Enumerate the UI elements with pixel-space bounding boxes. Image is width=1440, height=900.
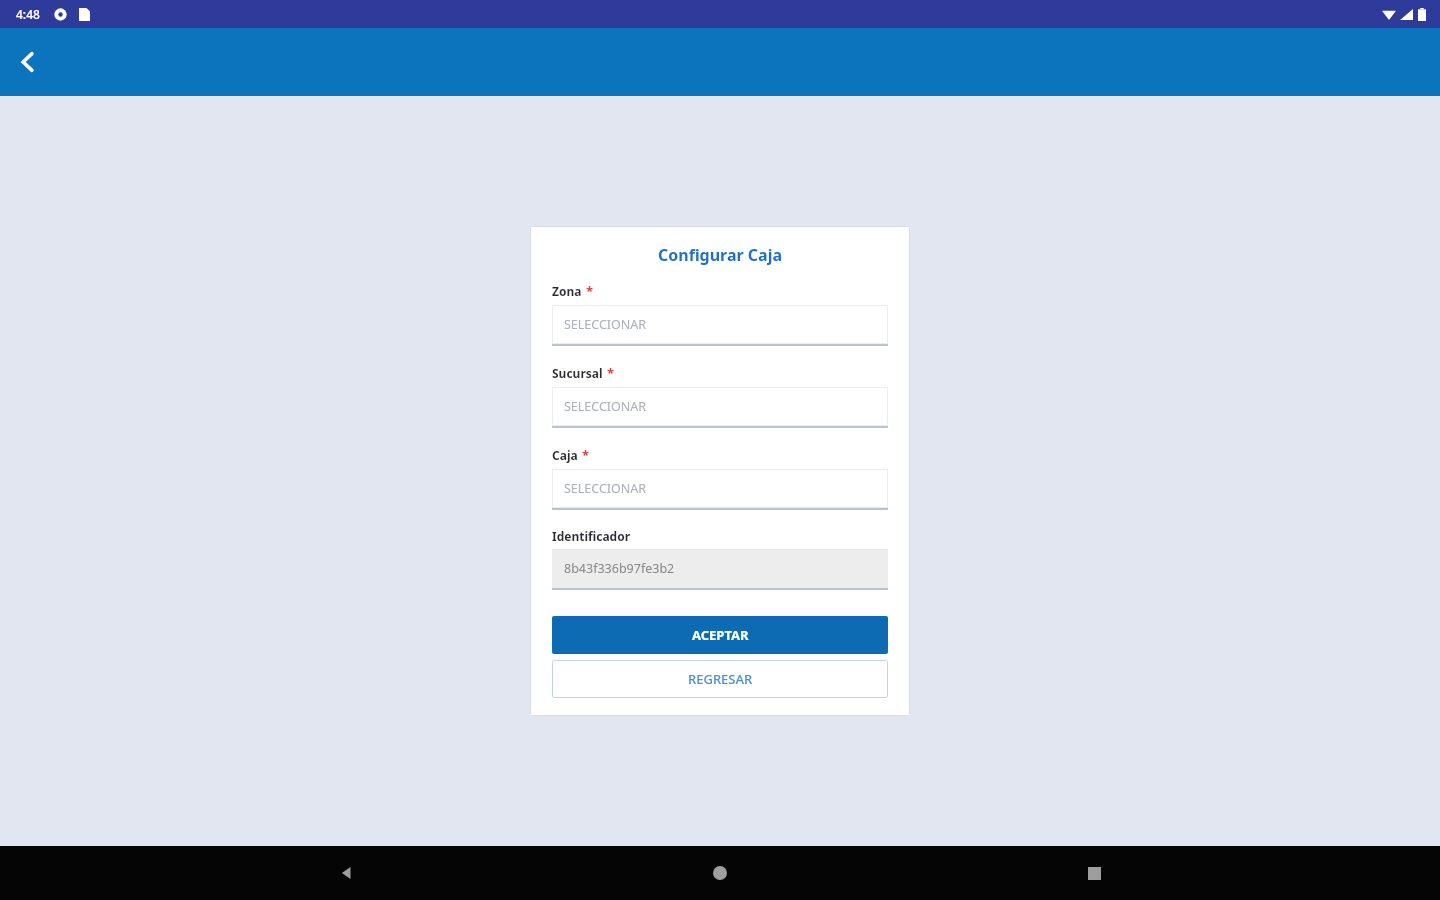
staticText: REGRESAR <box>688 670 753 688</box>
staticText: Caja <box>552 447 578 463</box>
button[interactable]: SELECCIONAR <box>552 469 888 510</box>
button[interactable]: Back <box>6 40 50 84</box>
staticText: 8b43f336b97fe3b2 <box>564 560 675 577</box>
button[interactable]: SELECCIONAR <box>552 305 888 346</box>
staticText: * <box>582 446 590 464</box>
staticText: SELECCIONAR <box>564 480 647 497</box>
button[interactable]: ACEPTAR <box>552 616 888 654</box>
staticText: * <box>586 282 594 300</box>
button[interactable]: Back <box>320 846 374 900</box>
staticText: Zona <box>552 283 582 299</box>
staticText: Identificador <box>552 528 631 544</box>
staticText: Configurar Caja <box>552 244 888 266</box>
staticText: SELECCIONAR <box>564 316 647 333</box>
staticText: 4:48 <box>16 6 40 22</box>
staticText: * <box>607 364 615 382</box>
staticText: ACEPTAR <box>692 626 749 644</box>
button[interactable]: REGRESAR <box>552 660 888 698</box>
button[interactable]: Home <box>693 846 747 900</box>
staticText: SELECCIONAR <box>564 398 647 415</box>
button[interactable]: Recent apps <box>1067 846 1121 900</box>
staticText: Sucursal <box>552 365 603 381</box>
button[interactable]: SELECCIONAR <box>552 387 888 428</box>
